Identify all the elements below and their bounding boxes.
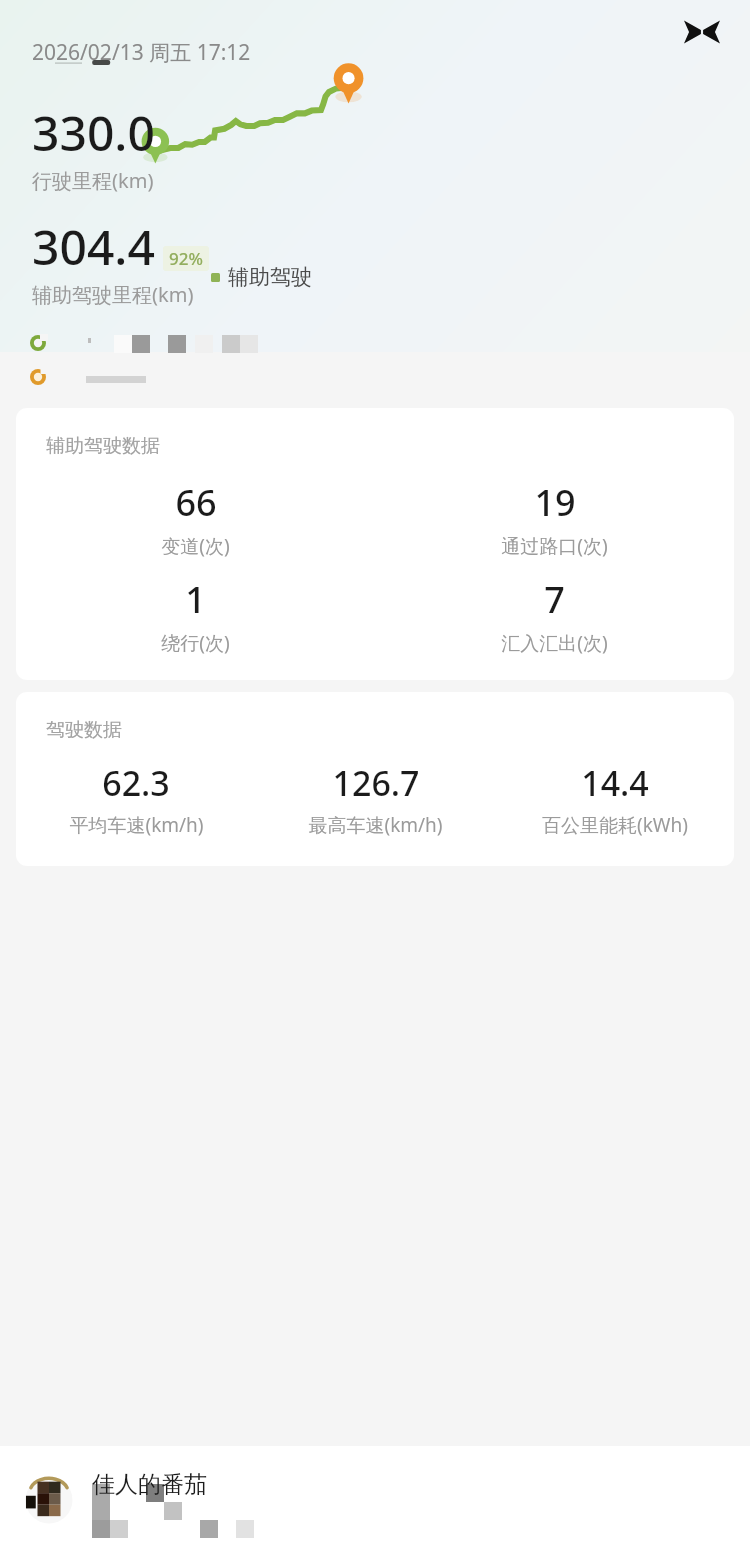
staticText: 变道(次) bbox=[161, 533, 230, 559]
button[interactable]: 佳人的番茄 bbox=[0, 1446, 750, 1542]
staticText: 62.3 bbox=[102, 760, 170, 806]
staticText: 汇入汇出(次) bbox=[501, 630, 608, 656]
staticText: 2026/02/13 周五 17:12 bbox=[32, 38, 251, 67]
button[interactable]: 126.7 bbox=[256, 760, 495, 838]
button[interactable]: 1 bbox=[16, 575, 375, 656]
staticText: 行驶里程(km) bbox=[32, 167, 154, 194]
button[interactable]: Brand logo bbox=[676, 6, 728, 58]
staticText: 百公里能耗(kWh) bbox=[542, 812, 688, 838]
staticText: 330.0 bbox=[32, 100, 155, 165]
button[interactable]: 66 bbox=[16, 478, 375, 559]
staticText: 66 bbox=[175, 478, 217, 527]
staticText: 辅助驾驶数据 bbox=[46, 434, 160, 458]
staticText: 绕行(次) bbox=[161, 630, 230, 656]
button[interactable]: 19 bbox=[375, 478, 734, 559]
staticText: 最高车速(km/h) bbox=[308, 812, 443, 838]
button[interactable]: 14.4 bbox=[495, 760, 734, 838]
staticText: 辅助驾驶里程(km) bbox=[32, 281, 194, 308]
staticText: 19 bbox=[534, 478, 576, 527]
staticText: 92% bbox=[169, 247, 203, 270]
staticText: 1 bbox=[185, 575, 206, 624]
button[interactable]: 驾驶数据 bbox=[16, 692, 734, 866]
button[interactable]: 62.3 bbox=[16, 760, 256, 838]
staticText: 通过路口(次) bbox=[501, 533, 608, 559]
staticText: 佳人的番茄 bbox=[92, 1470, 207, 1499]
button[interactable]: 辅助驾驶数据 bbox=[16, 408, 734, 680]
staticText: 7 bbox=[544, 575, 565, 624]
staticText: 辅助驾驶 bbox=[228, 264, 312, 290]
staticText: 驾驶数据 bbox=[46, 718, 122, 742]
staticText: 平均车速(km/h) bbox=[69, 812, 204, 838]
button[interactable]: 7 bbox=[375, 575, 734, 656]
staticText: 14.4 bbox=[581, 760, 649, 806]
staticText: 126.7 bbox=[332, 760, 420, 806]
staticText: 304.4 bbox=[32, 214, 155, 279]
